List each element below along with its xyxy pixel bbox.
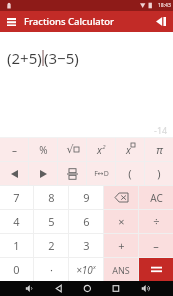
staticText: ÷: [153, 214, 160, 229]
button[interactable]: 0: [0, 258, 33, 281]
button[interactable]: x: [116, 138, 144, 161]
staticText: F↔D: [94, 169, 109, 179]
staticText: ×: [118, 214, 125, 229]
staticText: (2+5): [7, 48, 42, 68]
button[interactable]: %: [29, 138, 57, 161]
staticText: 0: [13, 262, 20, 277]
staticText: π: [156, 142, 163, 157]
staticText: 2: [48, 238, 55, 253]
staticText: +: [118, 238, 125, 253]
staticText: 5: [48, 214, 55, 229]
button[interactable]: +: [104, 234, 138, 257]
button[interactable]: F↔D: [87, 162, 115, 185]
button[interactable]: x: [87, 138, 115, 161]
staticText: (: [128, 166, 132, 181]
button[interactable]: AC: [139, 186, 173, 209]
button[interactable]: Fraction: [58, 162, 86, 185]
button[interactable]: ÷: [139, 210, 173, 233]
staticText: ×10: [76, 263, 93, 277]
button[interactable]: ): [145, 162, 173, 185]
staticText: 2: [102, 143, 106, 151]
staticText: x: [97, 143, 102, 157]
staticText: 8: [48, 190, 55, 205]
button[interactable]: 6: [69, 210, 103, 233]
button[interactable]: 9: [69, 186, 103, 209]
button[interactable]: (: [116, 162, 144, 185]
button[interactable]: 5: [34, 210, 68, 233]
button[interactable]: 4: [0, 210, 33, 233]
button[interactable]: Backspace: [152, 13, 169, 30]
staticText: 6: [83, 214, 90, 229]
staticText: ANS: [112, 264, 130, 276]
staticText: x: [126, 143, 131, 157]
staticText: 9: [83, 190, 90, 205]
staticText: ): [157, 166, 161, 181]
button[interactable]: –: [0, 138, 28, 161]
staticText: 4: [13, 214, 20, 229]
staticText: 1: [13, 238, 20, 253]
staticText: ·: [50, 262, 53, 277]
button[interactable]: Move cursor right: [29, 162, 57, 185]
button[interactable]: Equals: [139, 258, 173, 281]
staticText: x: [93, 263, 96, 271]
button[interactable]: Move cursor left: [0, 162, 28, 185]
button[interactable]: 7: [0, 186, 33, 209]
staticText: %: [39, 143, 48, 157]
staticText: -14: [154, 124, 168, 136]
button[interactable]: 1: [0, 234, 33, 257]
staticText: (3−5): [44, 48, 79, 68]
button[interactable]: ·: [34, 258, 68, 281]
button[interactable]: ×10: [69, 258, 103, 281]
button[interactable]: Delete: [104, 186, 138, 209]
button[interactable]: Open navigation menu: [3, 13, 20, 30]
staticText: –: [153, 238, 159, 253]
staticText: 3: [83, 238, 90, 253]
button[interactable]: π: [145, 138, 173, 161]
staticText: Fractions Calculator: [24, 15, 115, 28]
button[interactable]: 8: [34, 186, 68, 209]
button[interactable]: ANS: [104, 258, 138, 281]
button[interactable]: 2: [34, 234, 68, 257]
staticText: √: [66, 143, 74, 156]
button[interactable]: ×: [104, 210, 138, 233]
staticText: AC: [150, 191, 163, 205]
button[interactable]: √: [58, 138, 86, 161]
button[interactable]: 3: [69, 234, 103, 257]
staticText: 7: [13, 190, 20, 205]
staticText: –: [12, 143, 17, 157]
staticText: 18:43: [158, 2, 171, 9]
button[interactable]: –: [139, 234, 173, 257]
